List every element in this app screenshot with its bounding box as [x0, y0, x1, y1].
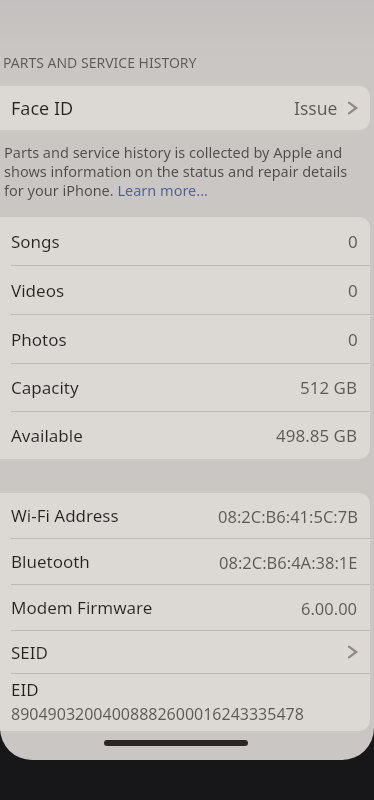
staticText: Modem Firmware [11, 596, 153, 619]
button[interactable]: Videos [0, 266, 370, 315]
staticText: 89049032004008882600016243335478 [11, 703, 304, 725]
other: Open SEID [347, 643, 358, 661]
button[interactable]: Modem Firmware [0, 585, 370, 631]
button[interactable]: Available [0, 412, 370, 459]
staticText: 0 [348, 328, 358, 351]
staticText: Songs [11, 230, 60, 253]
button[interactable]: Songs [0, 217, 370, 266]
staticText: 0 [348, 279, 358, 302]
staticText: 498.85 GB [276, 424, 358, 447]
button[interactable]: SEID [0, 631, 370, 674]
staticText: 08:2C:B6:41:5C:7B [218, 505, 358, 527]
staticText: Photos [11, 328, 67, 351]
staticText: Face ID [11, 96, 74, 121]
staticText: SEID [11, 641, 48, 664]
button[interactable]: Capacity [0, 364, 370, 412]
staticText: Issue [294, 96, 338, 120]
other: Open Face ID [347, 99, 358, 117]
button[interactable]: Bluetooth [0, 539, 370, 585]
staticText: Wi-Fi Address [11, 504, 119, 527]
button[interactable]: Photos [0, 315, 370, 364]
staticText: Parts and service history is collected b… [4, 142, 356, 201]
button[interactable]: Wi-Fi Address [0, 493, 370, 539]
staticText: Capacity [11, 376, 79, 399]
staticText: 6.00.00 [301, 597, 358, 619]
staticText: 0 [348, 230, 358, 253]
staticText: PARTS AND SERVICE HISTORY [3, 53, 197, 72]
staticText: Videos [11, 279, 65, 302]
staticText: Bluetooth [11, 550, 90, 573]
button[interactable]: Face ID [0, 86, 370, 130]
button[interactable]: EID [0, 674, 370, 731]
staticText: EID [11, 678, 39, 701]
staticText: 08:2C:B6:4A:38:1E [219, 551, 358, 573]
staticText: 512 GB [300, 376, 358, 399]
staticText: Available [11, 424, 83, 447]
